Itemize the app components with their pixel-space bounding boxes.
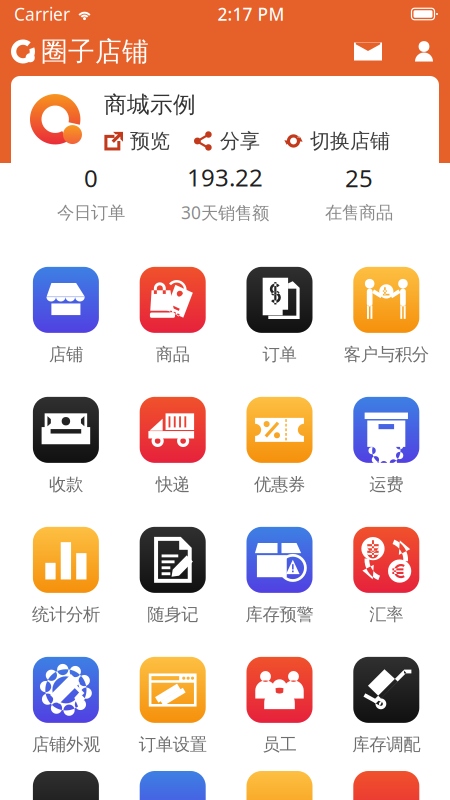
staticText: 圈子店铺 xyxy=(41,35,149,68)
staticText: 订单设置 xyxy=(139,734,207,755)
staticText: 统计分析 xyxy=(32,604,100,625)
staticText: 员工 xyxy=(262,734,296,755)
staticText: 收款 xyxy=(49,474,83,495)
button[interactable]: 订单设置 xyxy=(119,659,226,753)
staticText: 优惠券 xyxy=(254,474,305,495)
button[interactable]: 快递 xyxy=(119,399,226,493)
staticText: 商城示例 xyxy=(104,91,196,119)
button[interactable]: 随身记 xyxy=(119,529,226,623)
staticText: 订单 xyxy=(262,344,296,365)
button[interactable]: 订单 xyxy=(226,269,333,363)
staticText: 快递 xyxy=(156,474,190,495)
staticText: 库存调配 xyxy=(352,734,420,755)
staticText: 今日订单 xyxy=(57,202,125,223)
staticText: 库存预警 xyxy=(245,604,313,625)
button[interactable]: 预览 xyxy=(104,129,170,153)
button[interactable]: 统计分析 xyxy=(12,529,119,623)
staticText: 分享 xyxy=(220,129,260,153)
button[interactable]: 切换店铺 xyxy=(284,129,390,153)
staticText: 随身记 xyxy=(147,604,198,625)
staticText: 30天销售额 xyxy=(181,201,269,224)
button[interactable]: 分享 xyxy=(194,129,260,153)
button[interactable]: 库存调配 xyxy=(333,659,440,753)
staticText: 客户与积分 xyxy=(344,344,429,365)
button[interactable]: 客户与积分 xyxy=(333,269,440,363)
staticText: 0 xyxy=(84,162,98,194)
button[interactable]: 店铺 xyxy=(12,269,119,363)
button[interactable]: 收款 xyxy=(12,399,119,493)
button[interactable]: 店铺外观 xyxy=(12,659,119,753)
button[interactable]: Account xyxy=(409,36,439,66)
staticText: 商品 xyxy=(156,344,190,365)
staticText: 193.22 xyxy=(187,161,263,193)
staticText: 店铺 xyxy=(49,344,83,365)
staticText: 店铺外观 xyxy=(32,734,100,755)
staticText: 2:17 PM xyxy=(217,2,284,25)
button[interactable]: 员工 xyxy=(226,659,333,753)
staticText: Carrier xyxy=(14,2,70,25)
staticText: 运费 xyxy=(369,474,403,495)
staticText: 25 xyxy=(345,162,373,194)
button[interactable]: 商品 xyxy=(119,269,226,363)
staticText: 切换店铺 xyxy=(310,129,390,153)
staticText: 预览 xyxy=(130,129,170,153)
button[interactable]: 库存预警 xyxy=(226,529,333,623)
staticText: 在售商品 xyxy=(325,202,393,223)
button[interactable]: 汇率 xyxy=(333,529,440,623)
button[interactable]: 运费 xyxy=(333,399,440,493)
staticText: 汇率 xyxy=(369,604,403,625)
button[interactable]: 优惠券 xyxy=(226,399,333,493)
button[interactable]: Messages xyxy=(353,36,383,66)
